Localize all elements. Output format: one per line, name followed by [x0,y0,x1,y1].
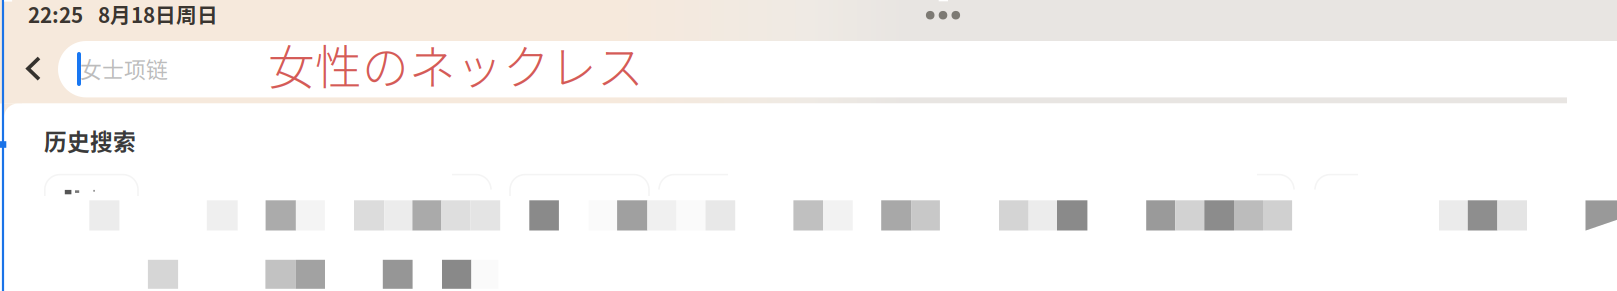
button[interactable]: Back [12,40,56,100]
button[interactable]: 女士项链 [58,42,618,99]
staticText: 女性のネックレス [268,30,644,98]
staticText: 22:25 8月18日周日 [28,0,218,29]
button[interactable]: Recent search [45,175,138,196]
staticText: 历史搜索 [44,124,136,157]
staticText: 女士项链 [80,52,168,84]
